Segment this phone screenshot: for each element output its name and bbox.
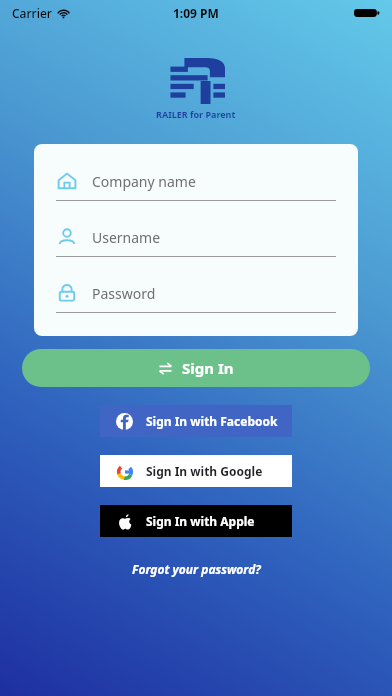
button[interactable]: Sign In with Facebook <box>100 405 292 437</box>
staticText: Password <box>92 284 156 303</box>
button[interactable]: Password <box>56 274 336 330</box>
staticText: RAILER for Parent <box>156 108 236 120</box>
button[interactable]: Sign In with Google <box>100 455 292 487</box>
staticText: Sign In <box>182 358 234 378</box>
staticText: Sign In with Google <box>146 463 263 479</box>
button[interactable]: Sign In with Apple <box>100 505 292 537</box>
staticText: Forgot your password? <box>132 561 261 577</box>
button[interactable]: Company name <box>56 162 336 218</box>
button[interactable]: Forgot your password? <box>120 557 273 581</box>
staticText: Company name <box>92 172 196 191</box>
staticText: Sign In with Facebook <box>146 413 278 429</box>
staticText: Sign In with Apple <box>146 513 255 529</box>
staticText: Username <box>92 228 161 247</box>
button[interactable]: Sign In <box>22 349 370 387</box>
staticText: Carrier <box>12 5 52 21</box>
button[interactable]: Username <box>56 218 336 274</box>
staticText: 1:09 PM <box>173 5 219 21</box>
